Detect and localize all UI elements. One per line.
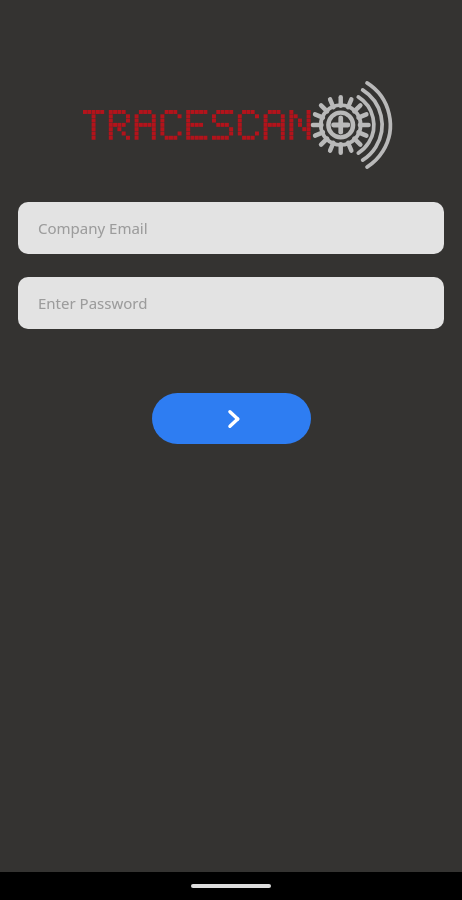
staticText: Company Email — [38, 218, 148, 238]
button[interactable]: Company Email — [18, 202, 444, 254]
button[interactable]: Enter Password — [18, 277, 444, 329]
button[interactable]: Sign in — [152, 393, 311, 444]
staticText: Enter Password — [38, 293, 148, 313]
